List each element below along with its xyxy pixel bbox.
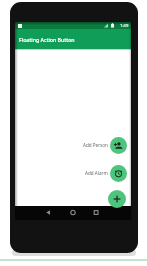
button[interactable] (108, 190, 126, 208)
staticText: Add Person (83, 142, 108, 148)
staticText: Floating Action Button (19, 36, 75, 43)
button[interactable] (110, 165, 127, 182)
staticText: Add Alarm (85, 170, 108, 176)
staticText: 1:39 (120, 23, 129, 29)
button[interactable] (110, 137, 127, 154)
button[interactable]: Add Alarm (68, 168, 108, 178)
button[interactable]: Floating Action Button (15, 29, 131, 49)
button[interactable]: Add Person (68, 140, 108, 150)
